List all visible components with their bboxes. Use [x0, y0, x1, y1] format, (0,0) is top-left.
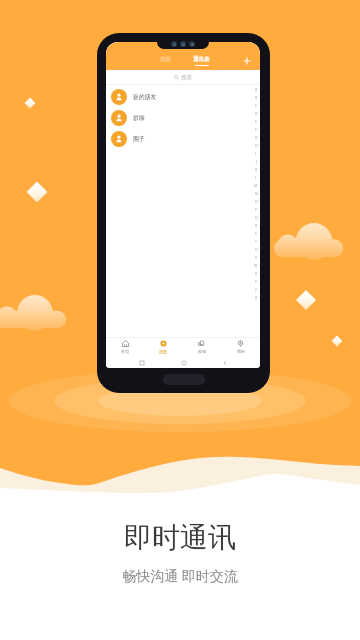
staticText: Y: [255, 279, 257, 284]
staticText: P: [255, 207, 258, 212]
button[interactable]: 群聊: [106, 107, 260, 128]
button[interactable]: 首页: [106, 338, 144, 356]
staticText: U: [255, 247, 258, 252]
staticText: Z: [255, 287, 257, 292]
staticText: V: [255, 255, 258, 260]
staticText: X: [255, 271, 257, 276]
button[interactable]: 消息: [144, 338, 182, 356]
staticText: 我的: [237, 349, 245, 354]
button[interactable]: Home: [178, 357, 189, 368]
staticText: M: [254, 183, 258, 188]
staticText: 圈子: [133, 135, 145, 142]
button[interactable]: 消息: [158, 56, 173, 63]
staticText: C: [255, 103, 258, 108]
button[interactable]: Back: [219, 357, 230, 368]
staticText: A: [255, 87, 258, 92]
staticText: L: [255, 175, 257, 180]
button[interactable]: 新的朋友: [106, 86, 260, 107]
staticText: 即时通讯: [0, 520, 360, 555]
staticText: N: [255, 191, 258, 196]
staticText: G: [255, 135, 258, 140]
staticText: K: [255, 167, 258, 172]
button[interactable]: 圈子: [106, 128, 260, 149]
staticText: S: [255, 231, 257, 236]
staticText: 消息: [159, 349, 167, 354]
staticText: 通讯录: [193, 56, 210, 63]
staticText: F: [255, 127, 257, 132]
staticText: 发现: [198, 349, 206, 354]
staticText: T: [255, 239, 257, 244]
staticText: 消息: [160, 56, 171, 63]
staticText: J: [256, 159, 257, 164]
staticText: 搜索: [181, 74, 192, 81]
staticText: 首页: [121, 349, 129, 354]
staticText: O: [255, 199, 258, 204]
staticText: D: [255, 111, 258, 116]
staticText: R: [255, 223, 258, 228]
staticText: I: [255, 151, 257, 156]
staticText: H: [255, 143, 258, 148]
staticText: #: [255, 295, 258, 300]
button[interactable]: Add: [240, 54, 254, 68]
button[interactable]: 发现: [182, 338, 221, 356]
button[interactable]: 通讯录: [191, 56, 212, 66]
staticText: 畅快沟通 即时交流: [0, 566, 360, 585]
button[interactable]: Recents: [136, 357, 147, 368]
button[interactable]: 搜索: [164, 74, 202, 81]
staticText: B: [255, 95, 258, 100]
staticText: E: [255, 119, 257, 124]
staticText: W: [254, 263, 258, 268]
staticText: 新的朋友: [133, 93, 157, 100]
staticText: Q: [255, 215, 258, 220]
staticText: 群聊: [133, 114, 145, 121]
button[interactable]: 我的: [221, 338, 260, 356]
